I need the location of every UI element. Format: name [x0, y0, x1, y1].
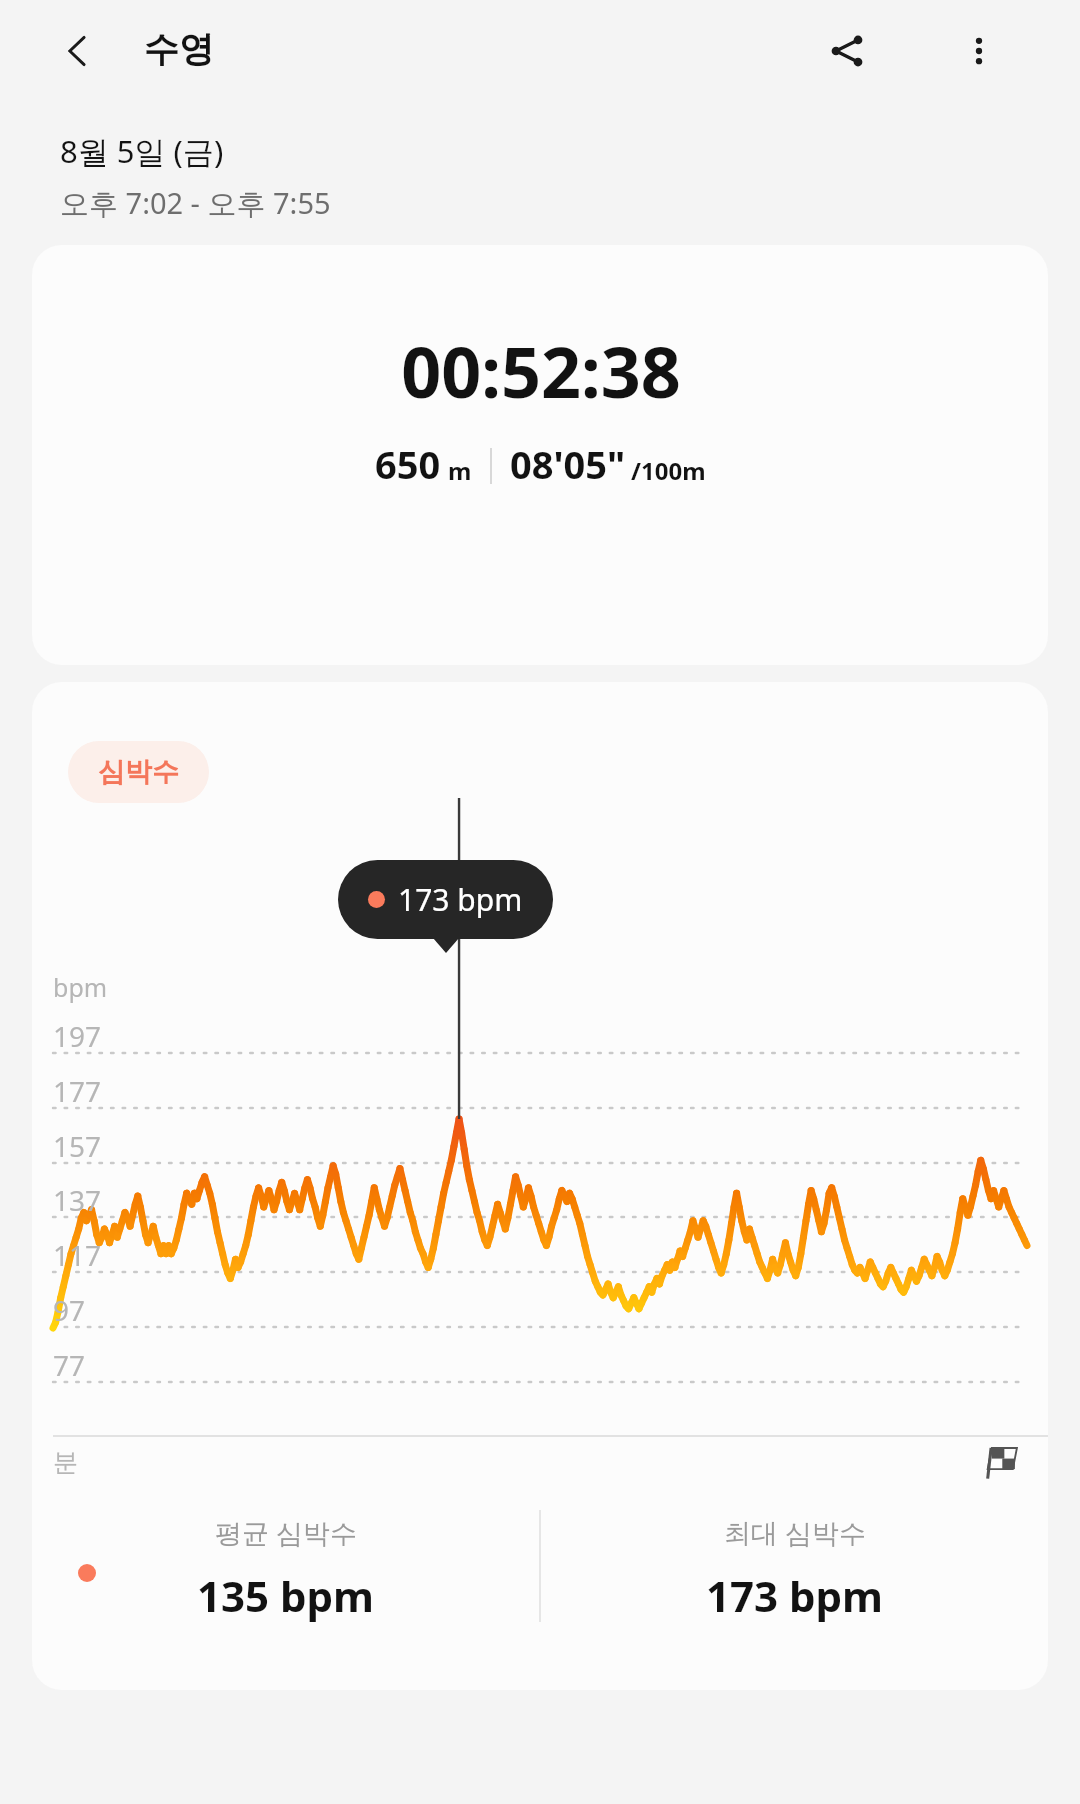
- button[interactable]: More options: [936, 8, 1022, 94]
- staticText: 8월 5일 (금): [60, 130, 224, 172]
- button[interactable]: 173 bpm: [338, 860, 553, 939]
- staticText: 분: [53, 1447, 78, 1478]
- staticText: 08'05": [510, 438, 626, 490]
- staticText: 173 bpm: [398, 879, 523, 920]
- staticText: 97: [53, 1291, 86, 1329]
- staticText: 오후 7:02 - 오후 7:55: [60, 183, 331, 223]
- staticText: 최대 심박수: [724, 1514, 867, 1551]
- staticText: 117: [53, 1236, 102, 1274]
- staticText: 177: [53, 1072, 102, 1110]
- staticText: 수영: [144, 27, 214, 71]
- staticText: 137: [53, 1181, 102, 1219]
- staticText: 평균 심박수: [215, 1514, 358, 1551]
- button[interactable]: Back: [38, 11, 118, 91]
- button[interactable]: 심박수: [68, 741, 209, 803]
- staticText: 650: [375, 438, 441, 490]
- staticText: m: [448, 454, 472, 487]
- button[interactable]: 평균 심박수: [32, 1502, 539, 1672]
- button[interactable]: 00:52:38: [32, 245, 1048, 665]
- staticText: 197: [53, 1017, 102, 1055]
- staticText: 135 bpm: [197, 1567, 375, 1624]
- staticText: 157: [53, 1127, 102, 1165]
- staticText: /100m: [631, 454, 706, 487]
- button[interactable]: Share: [804, 8, 890, 94]
- staticText: bpm: [53, 970, 108, 1004]
- staticText: 심박수: [98, 755, 179, 789]
- staticText: 00:52:38: [401, 323, 681, 418]
- button[interactable]: 최대 심박수: [541, 1502, 1048, 1672]
- staticText: 173 bpm: [706, 1567, 884, 1624]
- staticText: 77: [53, 1346, 86, 1384]
